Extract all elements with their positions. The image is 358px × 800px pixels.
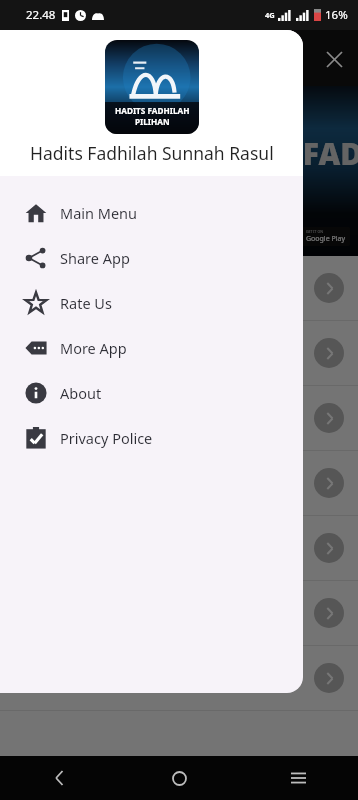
staticText: 22.48 [26,7,56,23]
button[interactable]: Penutup dan Doa [0,646,358,710]
button[interactable]: Hadits Fadhilah Bagian 4 [0,451,358,515]
staticText: GET IT ON [306,229,323,234]
button[interactable]: Hadits Fadhilah Bagian 6 [0,581,358,645]
staticText: Hadits Fadhilah Bagian 3 [14,409,314,428]
button[interactable]: Privacy Police [0,415,303,460]
staticText: Hadits Fadhilah Bagian 5 [14,539,314,558]
staticText: Google Play [306,234,345,244]
staticText: Hadits Fadhilah Bagian 6 [14,604,314,623]
button[interactable]: Rate Us [0,280,303,325]
staticText: More App [60,338,127,358]
button[interactable]: Close [316,41,352,77]
button[interactable]: Hadits Fadhilah Bagian 1 [0,256,358,320]
button[interactable]: Hadits Fadhilah Bagian 5 [0,516,358,580]
staticText: Penutup dan Doa [14,669,314,688]
button[interactable]: Main Menu [0,190,303,235]
staticText: About [60,383,102,403]
staticText: Privacy Police [60,428,153,448]
staticText: Hadits Fadhilah Bagian 4 [14,474,314,493]
staticText: HADITS FADHILAH [180,133,358,174]
button[interactable]: Hadits Fadhilah Bagian 3 [0,386,358,450]
staticText: Hadits Fadhilah Sunnah Rasul [30,141,274,165]
staticText: Hadits Fadhilah Bagian 1 [14,279,314,298]
staticText: Share App [60,248,130,268]
button[interactable]: More App [0,325,303,370]
staticText: PILIHAN [135,116,170,127]
staticText: Keutamaan Membaca Al Qur'... [14,344,314,363]
button[interactable]: Share App [0,235,303,280]
staticText: HADITS FADHILAH [115,105,190,116]
button[interactable]: Get it on Google Play [288,227,350,246]
button[interactable]: Recent apps [276,756,320,800]
staticText: 16% [325,7,348,23]
button[interactable]: Back [38,756,82,800]
staticText: Rate Us [60,293,112,313]
button[interactable]: Keutamaan Membaca Al Qur'... [0,321,358,385]
button[interactable]: About [0,370,303,415]
staticText: 4G [265,10,275,20]
button[interactable]: Home [157,756,201,800]
staticText: Main Menu [60,203,138,223]
